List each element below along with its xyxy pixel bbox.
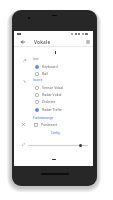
staticText: Vokale (34, 39, 51, 45)
staticText: Radar Tiefer (42, 107, 63, 112)
button[interactable]: Ball (35, 70, 87, 77)
staticText: Ball (42, 71, 49, 76)
button[interactable]: Punkteart (34, 121, 60, 128)
button[interactable]: Keyboard (35, 63, 87, 70)
button[interactable]: Menu item (20, 141, 26, 147)
staticText: Keyboard (42, 64, 58, 69)
staticText: Config (51, 131, 60, 135)
button[interactable]: Slider (28, 142, 88, 148)
button[interactable]: Diskrete (35, 98, 87, 105)
staticText: Punkteanzeige (33, 116, 54, 120)
staticText: Sensor Vokal (42, 85, 64, 90)
button[interactable]: Settings (84, 38, 92, 46)
button[interactable]: Menu item (21, 57, 27, 63)
staticText: Punkteart (41, 122, 58, 127)
staticText: Source (33, 78, 43, 82)
button[interactable]: Radar Tiefer (35, 106, 87, 113)
button[interactable]: Menu item (20, 121, 26, 127)
staticText: Line (33, 57, 39, 61)
button[interactable]: Back (19, 38, 27, 46)
button[interactable]: Radar Vokal (35, 91, 87, 98)
staticText: Radar Vokal (42, 92, 62, 97)
staticText: Diskrete (42, 99, 56, 104)
button[interactable]: Menu item (21, 78, 27, 84)
button[interactable]: Sensor Vokal (35, 84, 87, 91)
